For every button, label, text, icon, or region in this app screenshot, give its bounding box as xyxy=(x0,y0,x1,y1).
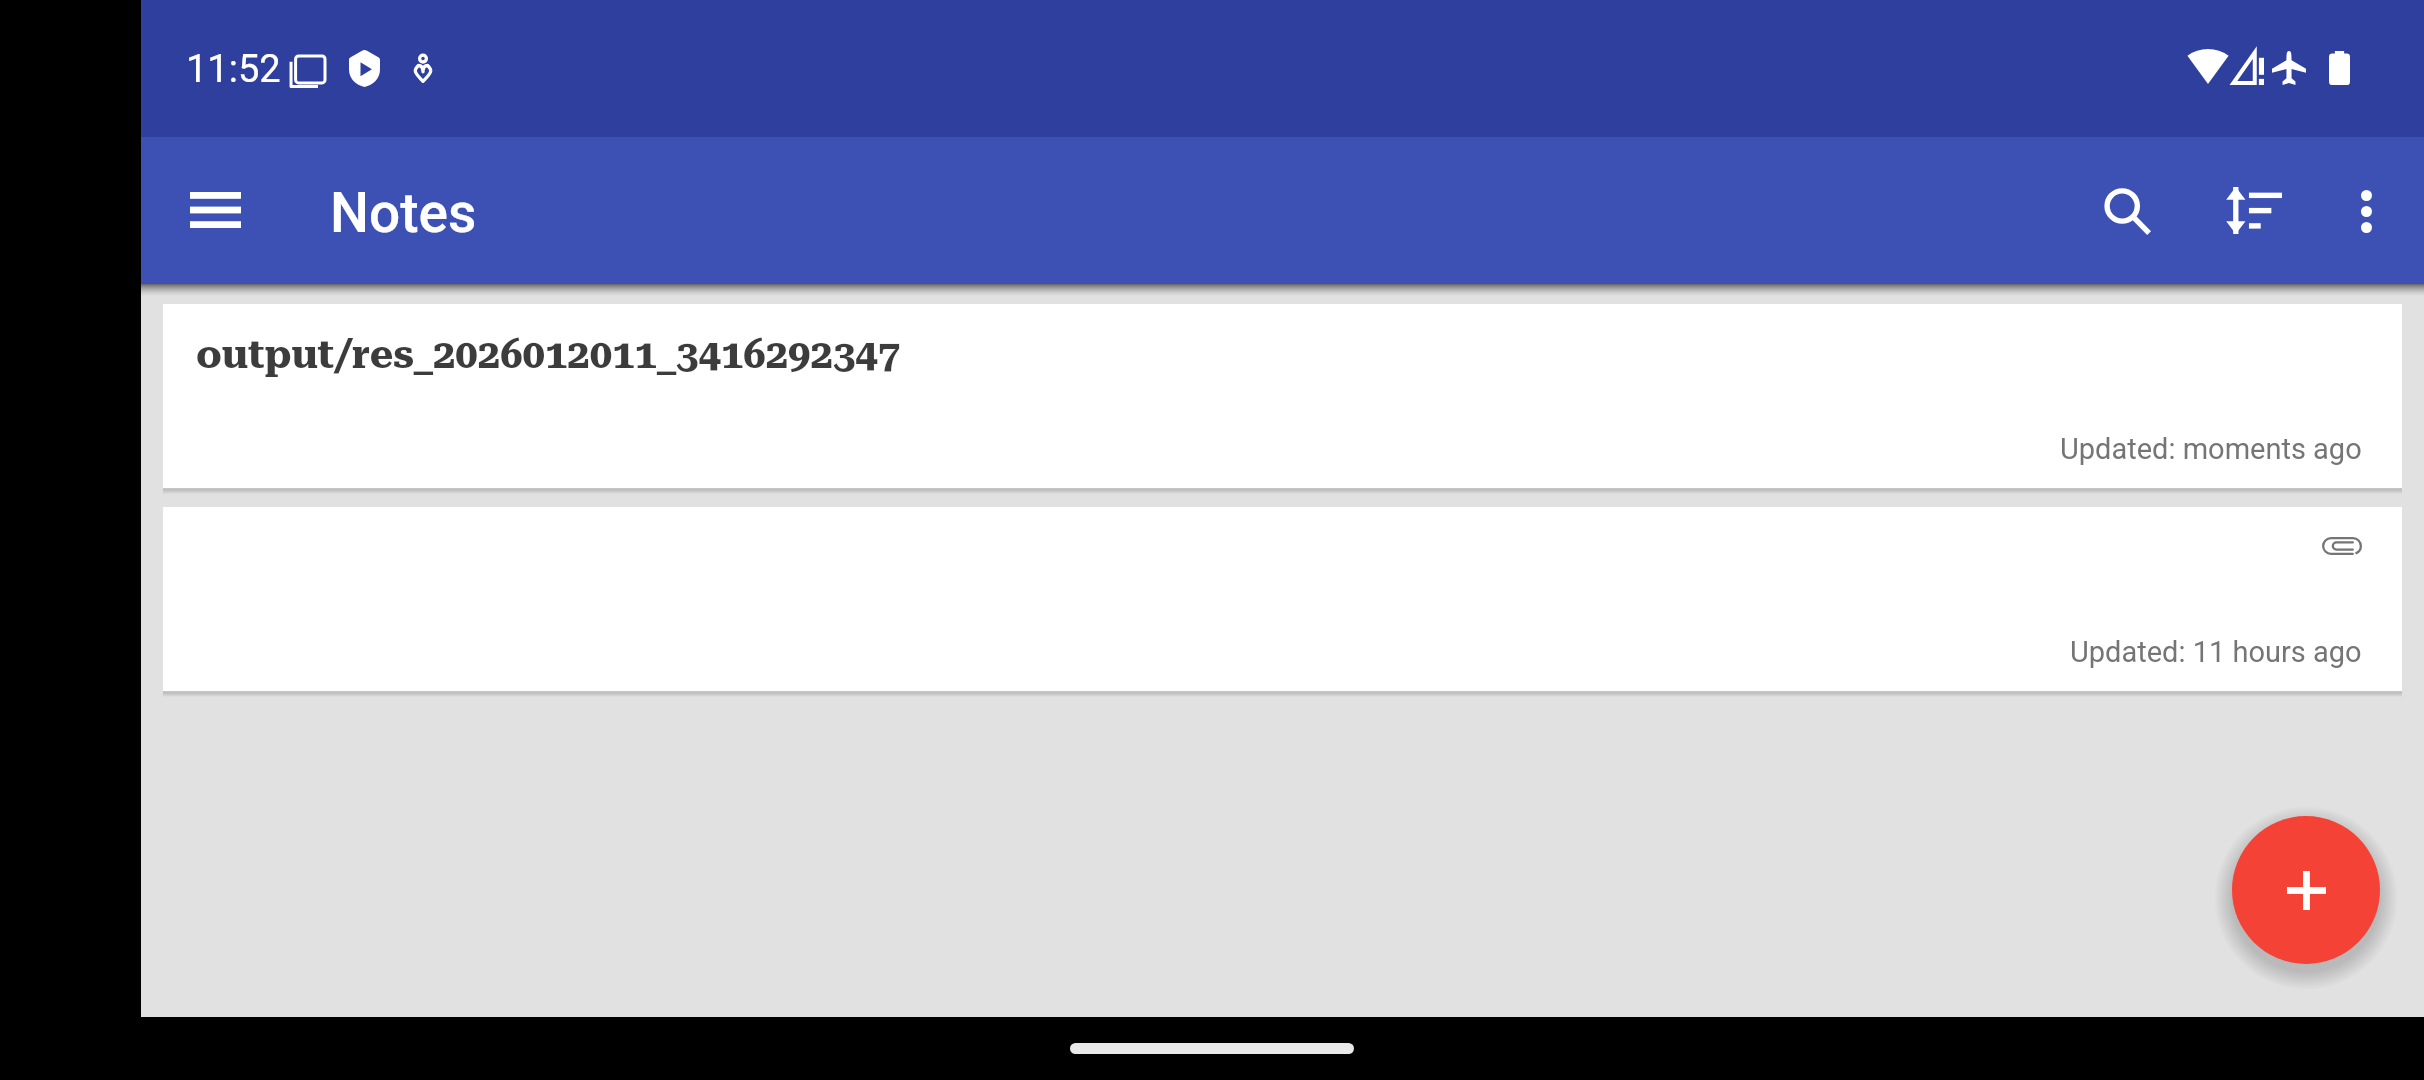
staticText: output/res_2026012011_3416292347 xyxy=(196,331,901,378)
button[interactable]: Open navigation drawer xyxy=(176,171,254,249)
button[interactable]: output/res_2026012011_3416292347 xyxy=(163,304,2402,488)
staticText: 11:52 xyxy=(186,47,281,92)
staticText: Notes xyxy=(330,181,477,245)
staticText: Updated: 11 hours ago xyxy=(2070,635,2362,669)
button[interactable]: Search xyxy=(2079,163,2175,259)
button[interactable]: Add note xyxy=(2232,816,2380,964)
button[interactable]: More options xyxy=(2318,163,2414,259)
staticText: Updated: moments ago xyxy=(2060,432,2362,466)
button[interactable]: Updated: 11 hours ago xyxy=(163,507,2402,691)
button[interactable]: Sort xyxy=(2214,162,2294,258)
